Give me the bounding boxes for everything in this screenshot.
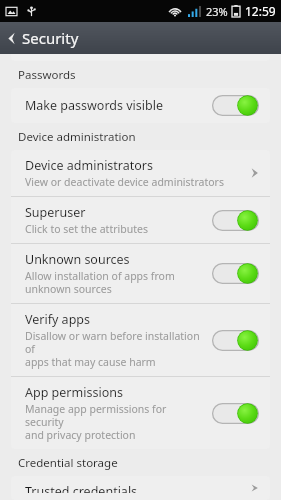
staticText: Credential storage — [18, 455, 118, 471]
staticText: 12:59 — [245, 3, 276, 19]
staticText: Click to set the attributes — [25, 222, 148, 236]
button[interactable]: Trusted credentials — [11, 476, 270, 500]
staticText: Device administrators — [25, 157, 154, 174]
staticText: Disallow or warn before installation of … — [25, 329, 206, 369]
staticText: 23% — [206, 4, 228, 19]
staticText: Manage app permissions for security and … — [25, 402, 206, 442]
staticText: Trusted credentials — [25, 483, 138, 493]
staticText: Security — [22, 28, 79, 48]
button[interactable]: Device administrators — [11, 150, 270, 196]
button[interactable]: Superuser — [11, 197, 270, 243]
staticText: Superuser — [25, 204, 86, 221]
button[interactable]: Make passwords visible — [11, 88, 270, 123]
staticText: Unknown sources — [25, 251, 130, 268]
button[interactable]: App permissions — [11, 377, 270, 449]
staticText: View or deactivate device administrators — [25, 175, 224, 189]
staticText: Device administration — [18, 129, 136, 145]
button[interactable]: Verify apps — [11, 304, 270, 376]
staticText: Make passwords visible — [25, 97, 163, 114]
staticText: Verify apps — [25, 311, 90, 328]
staticText: needrom — [189, 404, 257, 424]
staticText: Allow installation of apps from unknown … — [25, 269, 175, 296]
staticText: Passwords — [18, 67, 76, 83]
button[interactable]: Unknown sources — [11, 244, 270, 303]
staticText: rom — [225, 415, 260, 438]
staticText: App permissions — [25, 384, 123, 401]
button[interactable]: Navigate up — [0, 22, 281, 54]
